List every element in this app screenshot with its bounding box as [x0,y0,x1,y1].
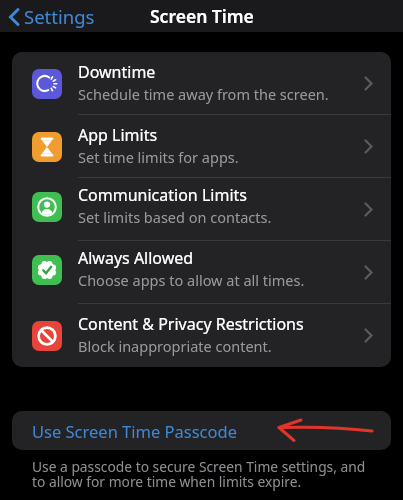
staticText: Use Screen Time Passcode [32,420,237,442]
staticText: Screen Time [150,4,254,28]
staticText: Choose apps to allow at all times. [78,270,305,290]
staticText: Set limits based on contacts. [78,207,272,227]
staticText: App Limits [78,124,158,146]
staticText: Downtime [78,61,156,83]
staticText: Schedule time away from the screen. [78,84,329,104]
staticText: Communication Limits [78,184,247,206]
staticText: Set time limits for apps. [78,147,239,167]
staticText: Settings [24,4,95,29]
staticText: Use a passcode to secure Screen Time set… [32,457,366,491]
staticText: Always Allowed [78,247,194,269]
staticText: Block inappropriate content. [78,336,272,356]
staticText: Content & Privacy Restrictions [78,313,304,335]
